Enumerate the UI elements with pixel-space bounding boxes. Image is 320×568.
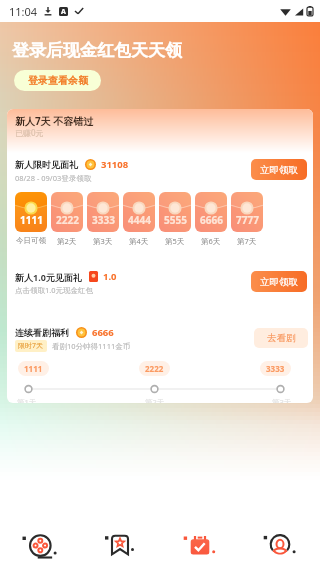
staticText: A	[61, 7, 66, 16]
button[interactable]: 立即领取	[251, 159, 307, 180]
staticText: 1111	[20, 213, 43, 227]
staticText: 今日可领	[16, 236, 46, 245]
staticText: 第3天	[93, 236, 113, 246]
button[interactable]: 2222	[51, 192, 83, 232]
staticText: 5555	[164, 213, 187, 227]
staticText: 第4天	[129, 236, 149, 246]
staticText: 登录查看余额	[28, 74, 88, 87]
button[interactable]: 3333	[87, 192, 119, 232]
staticText: 2222	[56, 213, 79, 227]
staticText: 第2天	[145, 397, 165, 403]
staticText: 4444	[128, 213, 151, 227]
staticText: 第5天	[165, 236, 185, 246]
staticText: 2222	[145, 363, 164, 374]
staticText: 第6天	[201, 236, 221, 246]
staticText: 已赚0元	[15, 127, 44, 138]
button[interactable]: Theater	[0, 522, 80, 568]
staticText: 第3天	[272, 397, 292, 403]
staticText: 第1天	[17, 397, 37, 403]
staticText: 看剧10分钟得1111金币	[52, 341, 131, 351]
staticText: 3333	[266, 363, 285, 374]
button[interactable]: Profile	[240, 522, 320, 568]
staticText: 1.0	[103, 270, 117, 283]
button[interactable]: 5555	[159, 192, 191, 232]
staticText: 去看剧	[267, 332, 296, 344]
button[interactable]: 1111	[15, 192, 47, 232]
staticText: 新人限时见面礼	[15, 159, 78, 170]
staticText: 第2天	[57, 236, 77, 246]
staticText: 立即领取	[260, 276, 298, 288]
staticText: 3333	[92, 213, 115, 227]
staticText: 6666	[92, 326, 114, 339]
staticText: 点击领取1.0元现金红包	[15, 285, 94, 295]
button[interactable]: 4444	[123, 192, 155, 232]
button[interactable]: 立即领取	[251, 271, 307, 292]
staticText: 1111	[24, 363, 43, 374]
button[interactable]: 6666	[195, 192, 227, 232]
staticText: 立即领取	[260, 164, 298, 176]
button[interactable]: Tasks	[160, 522, 240, 568]
staticText: 11:04	[9, 4, 38, 19]
staticText: 新人7天 不容错过	[15, 114, 94, 128]
staticText: 限时7天	[18, 341, 44, 351]
button[interactable]: Bookmarks	[80, 522, 160, 568]
staticText: 新人1.0元见面礼	[15, 271, 82, 283]
staticText: 第7天	[237, 236, 257, 246]
staticText: 31108	[101, 158, 129, 171]
button[interactable]: 7777	[231, 192, 263, 232]
staticText: 6666	[200, 213, 223, 227]
staticText: 连续看剧福利	[15, 327, 69, 338]
staticText: 08/28 - 09/03登录领取	[15, 173, 92, 183]
button[interactable]: 登录查看余额	[14, 70, 101, 91]
staticText: 7777	[236, 213, 259, 227]
button[interactable]: 去看剧	[254, 328, 308, 348]
staticText: 登录后现金红包天天领	[12, 40, 182, 61]
